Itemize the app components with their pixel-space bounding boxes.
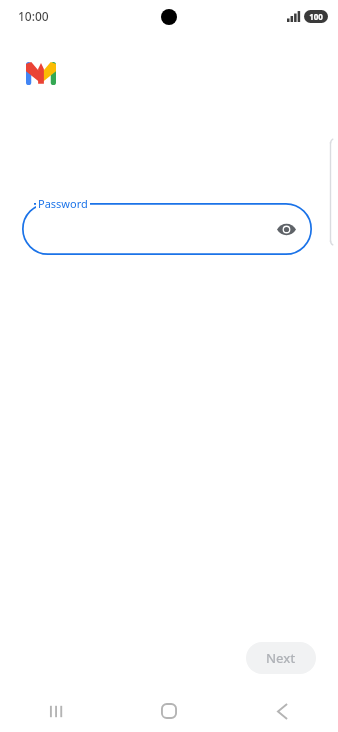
staticText: 100	[309, 11, 323, 22]
button[interactable]: Password	[22, 203, 312, 255]
button[interactable]: Next	[246, 642, 316, 674]
staticText: Next	[266, 649, 296, 667]
button[interactable]: Home	[147, 690, 191, 732]
button[interactable]: Recent apps	[34, 690, 78, 732]
button[interactable]: Back	[260, 690, 304, 732]
staticText: Password	[38, 196, 88, 211]
staticText: 10:00	[18, 8, 49, 24]
button[interactable]: Show password	[270, 213, 302, 245]
